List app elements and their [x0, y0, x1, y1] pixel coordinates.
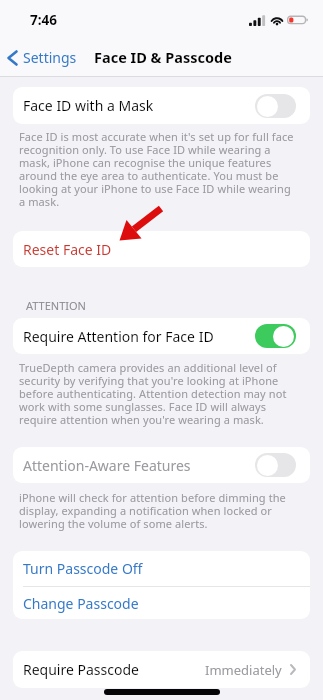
button[interactable]: Back: [7, 48, 77, 67]
button[interactable]: On: [255, 324, 296, 348]
staticText: Reset Face ID: [23, 240, 112, 259]
button[interactable]: Off: [255, 94, 296, 118]
button[interactable]: Require Passcode: [13, 651, 310, 688]
staticText: Face ID is most accurate when it's set u…: [19, 129, 296, 210]
staticText: iPhone will check for attention before d…: [19, 490, 296, 532]
staticText: Turn Passcode Off: [23, 559, 143, 578]
staticText: Require Attention for Face ID: [23, 327, 214, 346]
staticText: Face ID & Passcode: [94, 47, 232, 67]
staticText: Immediately: [205, 661, 282, 679]
staticText: TrueDepth camera provides an additional …: [19, 360, 296, 428]
staticText: Attention-Aware Features: [23, 456, 191, 475]
button[interactable]: Attention-Aware Features: [13, 447, 310, 483]
button[interactable]: Change Passcode: [13, 587, 310, 619]
staticText: 7:46: [30, 11, 57, 29]
button[interactable]: Off: [255, 453, 296, 477]
button[interactable]: Face ID with a Mask: [13, 87, 310, 124]
button[interactable]: Require Attention for Face ID: [13, 318, 310, 354]
staticText: Face ID with a Mask: [23, 96, 154, 115]
button[interactable]: Turn Passcode Off: [13, 551, 310, 586]
staticText: Settings: [23, 48, 77, 67]
other: Back: [7, 50, 18, 66]
staticText: Change Passcode: [23, 594, 139, 613]
staticText: Require Passcode: [23, 660, 139, 679]
button[interactable]: Reset Face ID: [13, 231, 310, 267]
staticText: ATTENTION: [26, 298, 86, 313]
